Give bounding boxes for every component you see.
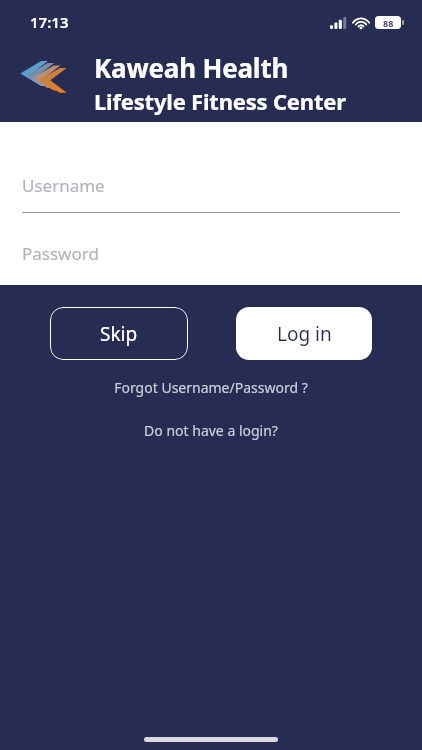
button[interactable]: Do not have a login? — [0, 417, 422, 444]
staticText: Password — [22, 242, 99, 265]
button[interactable]: Log in — [236, 307, 372, 360]
staticText: Kaweah Health — [94, 50, 289, 85]
staticText: Lifestyle Fitness Center — [94, 86, 346, 116]
staticText: Log in — [277, 321, 332, 347]
button[interactable]: Skip — [50, 307, 188, 360]
staticText: Do not have a login? — [144, 421, 278, 440]
staticText: 17:13 — [30, 12, 69, 32]
staticText: Skip — [100, 321, 138, 347]
staticText: Username — [22, 174, 105, 197]
staticText: Forgot Username/Password ? — [114, 378, 308, 397]
staticText: 88 — [383, 17, 394, 29]
button[interactable]: Username — [0, 150, 422, 222]
button[interactable]: Forgot Username/Password ? — [0, 374, 422, 401]
button[interactable]: Password — [0, 222, 422, 282]
